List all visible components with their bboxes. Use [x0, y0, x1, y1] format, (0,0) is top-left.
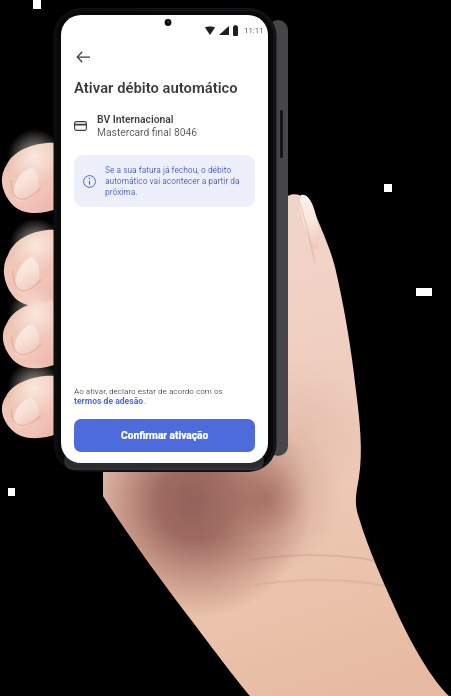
staticText: Confirmar ativação: [121, 430, 209, 442]
staticText: .: [144, 396, 147, 406]
staticText: Mastercard final 8046: [97, 126, 198, 138]
staticText: 11:11: [244, 26, 264, 35]
staticText: Ativar débito automático: [74, 79, 238, 96]
staticText: BV Internacional: [97, 113, 174, 125]
button[interactable]: termos de adesão: [74, 396, 144, 406]
staticText: Se a sua fatura já fechou, o débito auto…: [105, 165, 245, 197]
button[interactable]: Voltar: [69, 46, 97, 67]
button[interactable]: Confirmar ativação: [74, 419, 255, 452]
staticText: Ao ativar, declaro estar de acordo com o…: [74, 386, 223, 395]
